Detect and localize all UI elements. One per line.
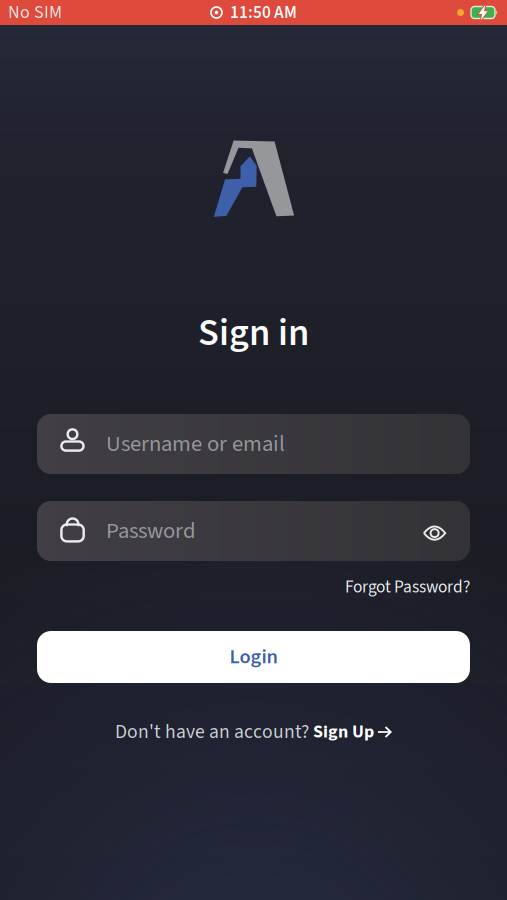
- staticText: Login: [229, 642, 277, 671]
- staticText: No SIM: [8, 0, 62, 25]
- staticText: Don't have an account?: [115, 718, 313, 746]
- staticText: Sign Up: [313, 719, 374, 745]
- staticText: Password: [106, 515, 196, 547]
- staticText: Forgot Password?: [345, 575, 470, 599]
- button[interactable]: Username or email: [37, 414, 470, 474]
- button[interactable]: Forgot Password?: [345, 577, 470, 597]
- button[interactable]: Don't have an account?: [115, 721, 392, 743]
- staticText: Sign in: [198, 306, 309, 360]
- staticText: Username or email: [106, 428, 285, 460]
- button[interactable]: Login: [37, 631, 470, 683]
- staticText: 11:50 AM: [230, 0, 297, 25]
- button[interactable]: Password: [37, 501, 470, 561]
